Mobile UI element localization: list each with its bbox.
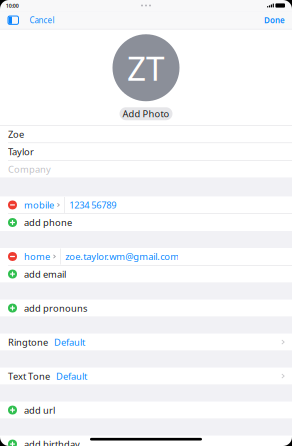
staticText: Cancel [29,15,54,25]
staticText: Zoe [8,128,24,140]
staticText: zoe.taylor.wm@gmail.com [65,250,179,263]
button[interactable]: home [0,248,292,265]
button[interactable]: Text Tone [0,368,292,385]
staticText: Default [54,336,85,348]
button[interactable]: add email [0,266,292,283]
button[interactable]: Done [257,12,292,28]
staticText: Text Tone [8,370,50,382]
staticText: mobile [24,199,54,211]
staticText: add pronouns [24,302,87,314]
staticText: home [24,250,50,263]
staticText: 10:00 [6,2,19,9]
staticText: Done [264,15,285,25]
staticText: Company [8,163,51,175]
staticText: 1234 56789 [69,199,116,211]
button[interactable]: add phone [0,214,292,231]
staticText: add url [24,404,55,416]
staticText: Taylor [8,145,34,158]
button[interactable]: add birthday [0,436,292,446]
button[interactable]: Add Photo [119,107,172,120]
staticText: add phone [24,216,72,229]
button[interactable]: add pronouns [0,300,292,317]
button[interactable]: Cancel [0,12,60,28]
staticText: add birthday [24,438,80,446]
staticText: add email [24,268,66,280]
staticText: Default [56,370,87,382]
staticText: Ringtone [8,336,48,348]
button[interactable]: mobile [0,196,292,213]
button[interactable]: Ringtone [0,334,292,351]
staticText: ZT [127,46,165,90]
button[interactable]: add url [0,402,292,419]
staticText: Add Photo [122,108,169,120]
